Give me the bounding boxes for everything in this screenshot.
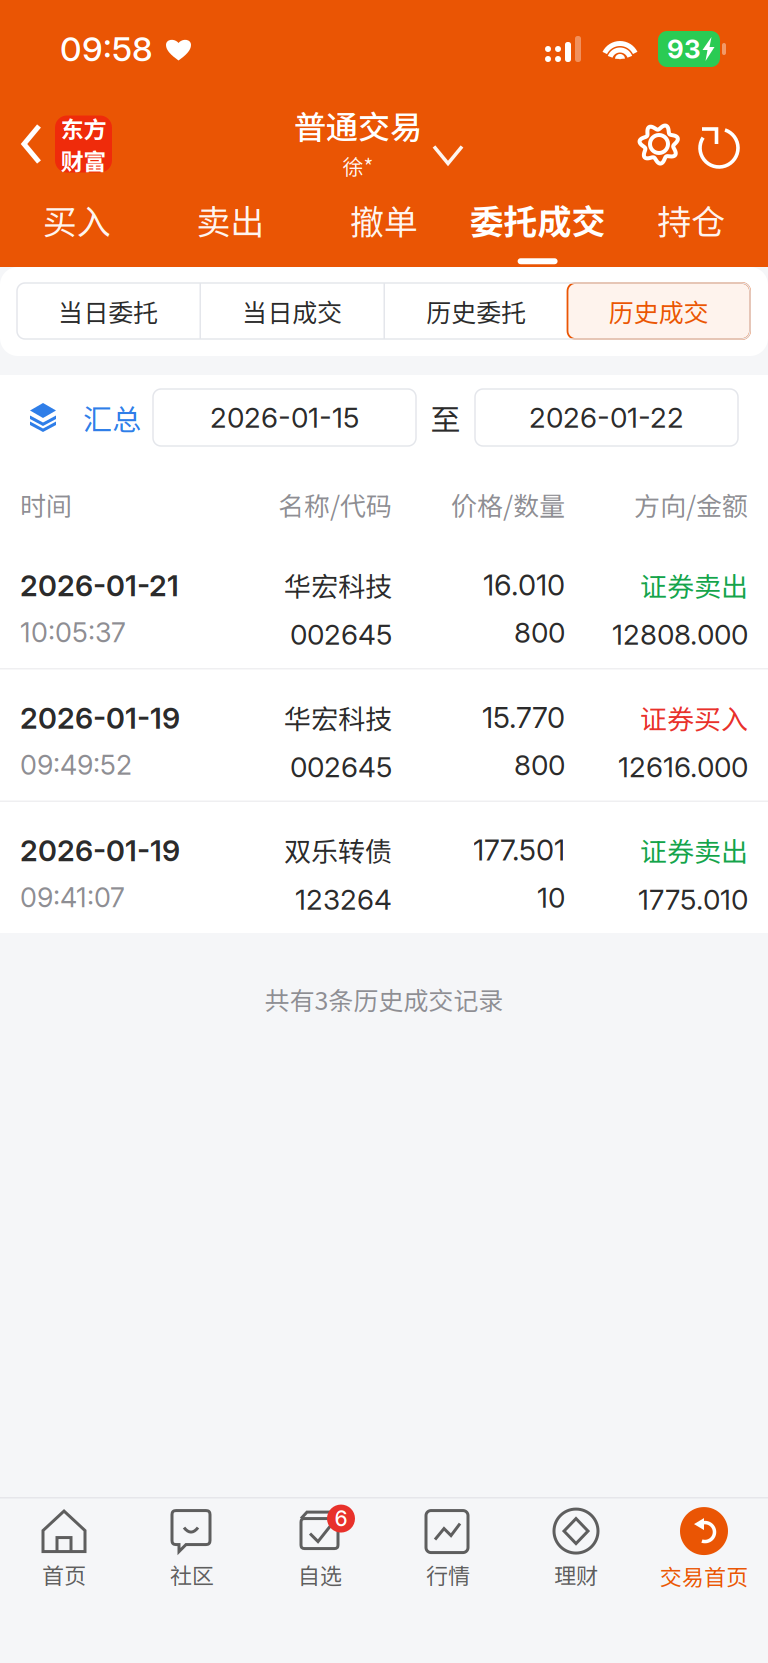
staticText: 证券卖出: [640, 565, 748, 605]
staticText: 共有3条历史成交记录: [264, 981, 503, 1017]
button[interactable]: 撤单: [307, 190, 461, 267]
staticText: 买入: [43, 195, 111, 244]
staticText: 撤单: [350, 195, 418, 244]
staticText: 普通交易: [294, 102, 422, 148]
staticText: 002645: [290, 750, 392, 784]
button[interactable]: 行情: [384, 1498, 512, 1600]
button[interactable]: 2026-01-15: [153, 389, 416, 446]
staticText: 2026-01-15: [210, 401, 359, 434]
button[interactable]: 汇总: [0, 380, 153, 454]
staticText: 行情: [426, 1559, 470, 1590]
button[interactable]: 买入: [0, 190, 154, 267]
staticText: 15.770: [482, 700, 565, 735]
button[interactable]: 持仓: [614, 190, 768, 267]
staticText: 历史委托: [426, 293, 526, 329]
staticText: 002645: [290, 618, 392, 651]
staticText: 2026-01-21: [20, 568, 179, 603]
button[interactable]: Settings: [636, 121, 682, 167]
staticText: 双乐转债: [284, 830, 392, 870]
staticText: 800: [514, 616, 565, 649]
button[interactable]: 普通交易: [294, 98, 464, 190]
staticText: 09:41:07: [20, 881, 125, 914]
staticText: 财富: [60, 143, 106, 177]
staticText: 交易首页: [660, 1560, 748, 1592]
staticText: 东方: [60, 111, 106, 144]
staticText: 10:05:37: [20, 616, 126, 649]
button[interactable]: 2026-01-22: [475, 389, 738, 446]
staticText: 12616.000: [618, 750, 748, 784]
button[interactable]: 社区: [128, 1498, 256, 1600]
staticText: 持仓: [657, 195, 725, 244]
staticText: 至: [430, 396, 460, 439]
staticText: 汇总: [83, 396, 141, 438]
button[interactable]: 历史委托: [385, 283, 567, 339]
staticText: 方向/金额: [634, 486, 748, 523]
staticText: 名称/代码: [278, 486, 392, 523]
button[interactable]: 首页: [0, 1498, 128, 1600]
button[interactable]: 2026-01-21: [0, 537, 768, 668]
button[interactable]: 2026-01-19: [0, 669, 768, 800]
staticText: 09:58: [60, 28, 153, 69]
staticText: 6: [334, 1506, 347, 1531]
staticText: 2026-01-22: [529, 401, 684, 434]
staticText: 10: [537, 881, 565, 914]
staticText: 理财: [554, 1559, 598, 1590]
staticText: 价格/数量: [451, 486, 565, 523]
staticText: 证券买入: [640, 698, 748, 737]
staticText: 徐*: [342, 150, 373, 181]
staticText: 华宏科技: [284, 698, 392, 737]
staticText: 时间: [20, 486, 72, 523]
button[interactable]: Refresh: [696, 117, 742, 171]
staticText: 历史成交: [609, 293, 709, 329]
staticText: 16.010: [483, 567, 565, 603]
staticText: 800: [514, 748, 565, 782]
staticText: 2026-01-19: [20, 701, 180, 736]
button[interactable]: 委托成交: [461, 190, 614, 267]
staticText: 93: [667, 33, 701, 65]
staticText: 委托成交: [470, 195, 606, 244]
staticText: 09:49:52: [20, 749, 132, 781]
button[interactable]: 2026-01-19: [0, 802, 768, 933]
button[interactable]: 当日成交: [201, 283, 383, 339]
button[interactable]: 当日委托: [17, 283, 199, 339]
staticText: 卖出: [196, 195, 264, 244]
staticText: 123264: [295, 883, 392, 916]
button[interactable]: 交易首页: [640, 1498, 768, 1600]
staticText: 1775.010: [638, 883, 748, 916]
button[interactable]: 6: [256, 1498, 384, 1600]
button[interactable]: Back: [0, 98, 122, 190]
staticText: 华宏科技: [284, 565, 392, 605]
button[interactable]: 历史成交: [567, 283, 750, 339]
staticText: 证券卖出: [640, 830, 748, 870]
staticText: 首页: [42, 1559, 86, 1590]
staticText: 2026-01-19: [20, 833, 180, 868]
staticText: 当日委托: [58, 293, 158, 329]
staticText: 自选: [298, 1559, 342, 1590]
staticText: 社区: [170, 1559, 214, 1590]
staticText: 177.501: [473, 832, 565, 868]
button[interactable]: 理财: [512, 1498, 640, 1600]
button[interactable]: 卖出: [154, 190, 307, 267]
staticText: 12808.000: [612, 618, 748, 651]
staticText: 当日成交: [242, 293, 342, 329]
